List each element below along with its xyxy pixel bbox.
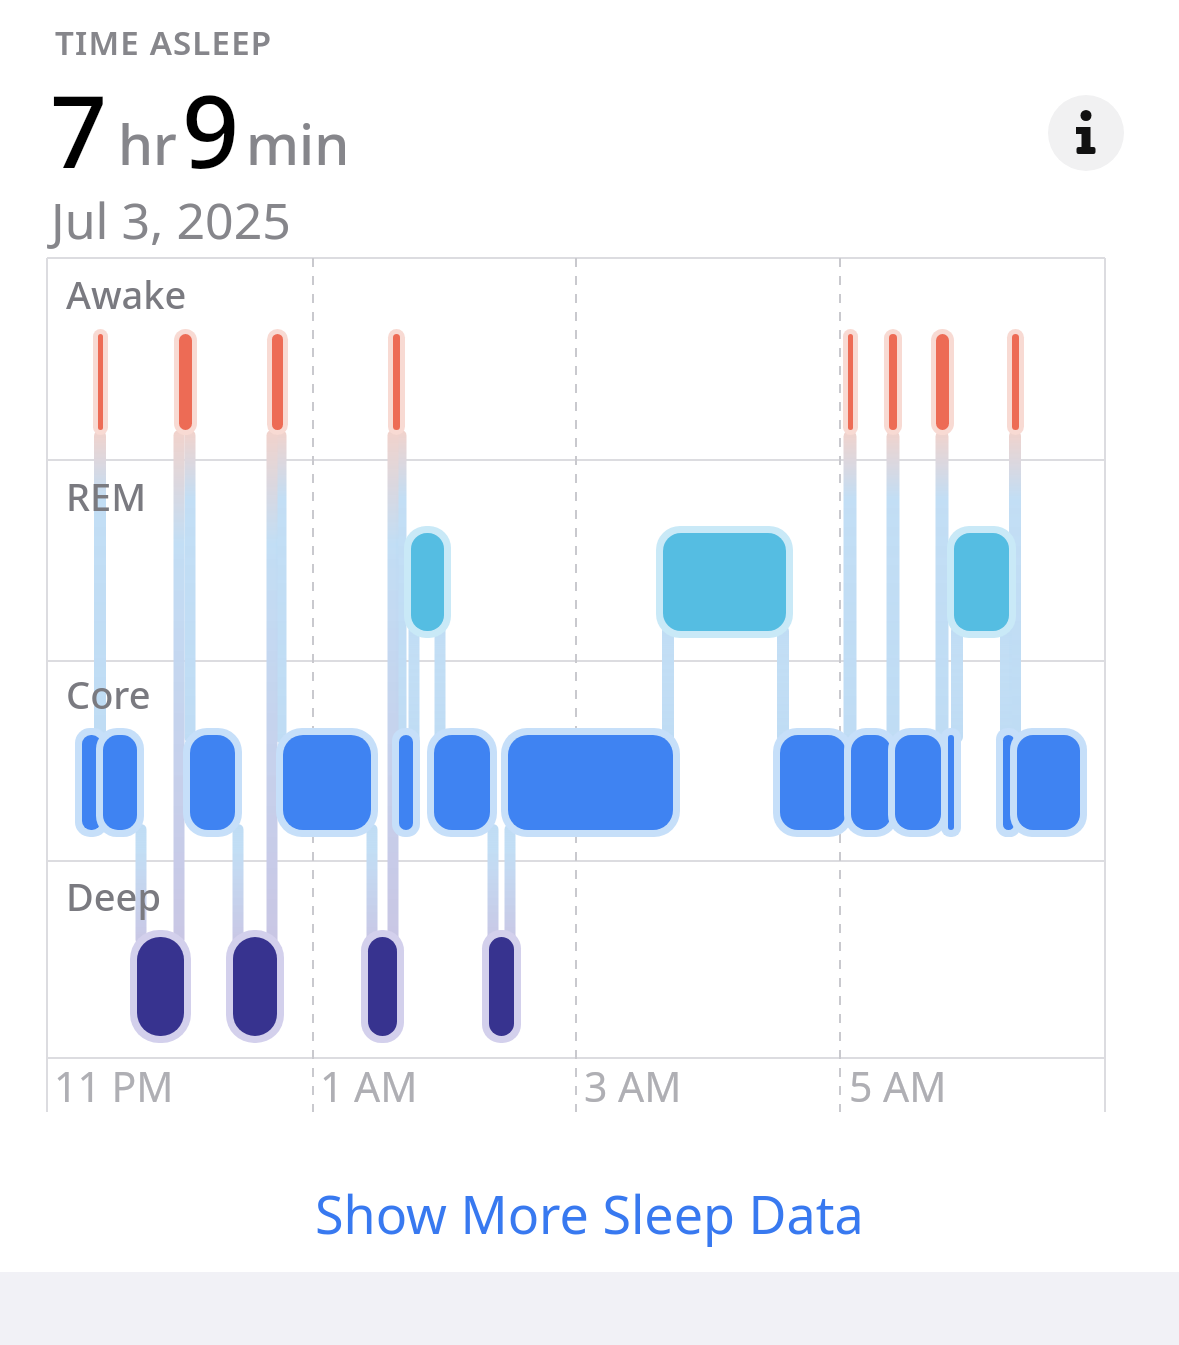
staticText: 5 AM	[849, 1058, 947, 1114]
staticText: TIME ASLEEP	[55, 20, 273, 65]
staticText: REM	[66, 470, 147, 522]
button[interactable]	[1048, 95, 1124, 171]
staticText: Show More Sleep Data	[315, 1178, 864, 1249]
staticText: 11 PM	[54, 1058, 174, 1114]
staticText: Jul 3, 2025	[51, 186, 291, 254]
staticText: 3 AM	[584, 1058, 682, 1114]
button[interactable]: Show More Sleep Data	[315, 1178, 864, 1249]
staticText: Core	[66, 668, 151, 720]
staticText: 7	[50, 61, 108, 197]
staticText: 9	[182, 61, 240, 197]
staticText: min	[246, 105, 350, 181]
staticText: Awake	[66, 268, 187, 320]
staticText: hr	[118, 105, 177, 181]
staticText: Deep	[66, 870, 161, 922]
staticText: 1 AM	[320, 1058, 418, 1114]
